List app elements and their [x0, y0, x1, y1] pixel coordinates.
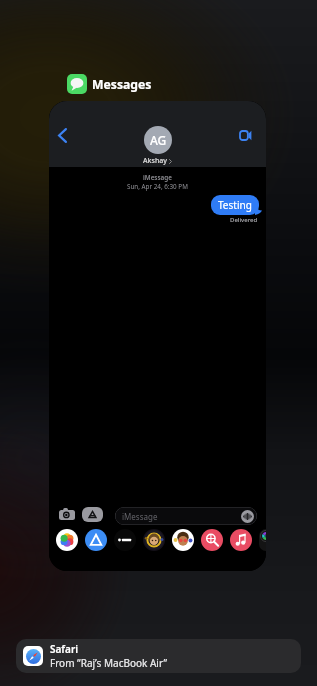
- staticText: AG: [150, 132, 167, 148]
- button[interactable]: Back: [49, 101, 266, 571]
- button[interactable]: App: [259, 529, 266, 551]
- button[interactable]: Apps: [82, 507, 103, 522]
- staticText: iMessage: [122, 511, 158, 522]
- button[interactable]: AG: [144, 126, 172, 154]
- staticText: From “Raj’s MacBook Air”: [50, 656, 168, 670]
- staticText: Delivered: [230, 216, 258, 224]
- staticText: Safari: [50, 642, 79, 656]
- button[interactable]: App: [114, 529, 136, 551]
- button[interactable]: FaceTime video call: [233, 123, 257, 147]
- button[interactable]: iMessage: [115, 507, 257, 525]
- staticText: Testing: [218, 198, 252, 212]
- button[interactable]: Back: [50, 123, 74, 147]
- button[interactable]: Camera: [56, 503, 78, 525]
- button[interactable]: Audio message: [241, 510, 254, 523]
- button[interactable]: Safari: [16, 639, 301, 673]
- staticText: Akshay: [143, 156, 167, 166]
- button[interactable]: App: [172, 529, 194, 551]
- staticText: Messages: [92, 76, 152, 93]
- staticText: iMessage: [143, 173, 172, 182]
- staticText: Sun, Apr 24, 6:30 PM: [127, 182, 188, 191]
- button[interactable]: App: [85, 529, 107, 551]
- button[interactable]: App: [201, 529, 223, 551]
- button[interactable]: App: [230, 529, 252, 551]
- button[interactable]: App: [143, 529, 165, 551]
- button[interactable]: App: [56, 529, 78, 551]
- button[interactable]: Testing: [211, 195, 259, 215]
